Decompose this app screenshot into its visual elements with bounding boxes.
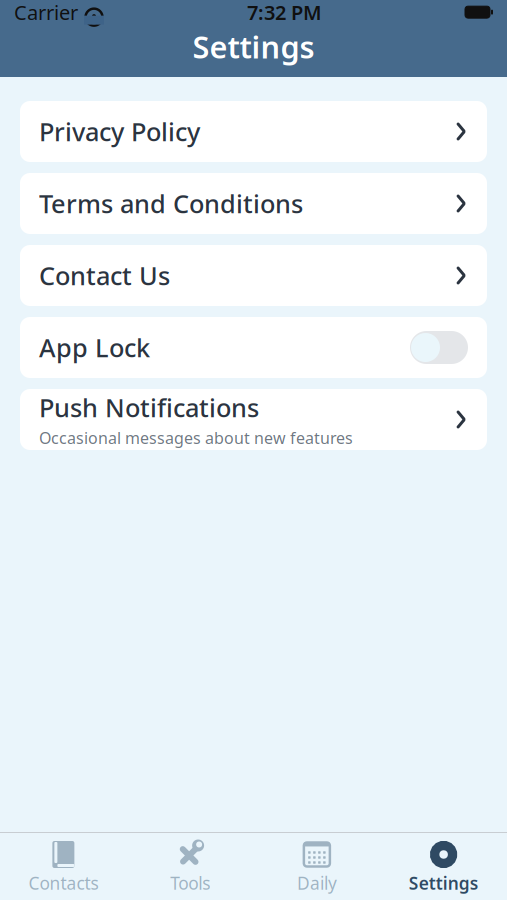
button[interactable]: Push Notifications [20,389,487,450]
staticText: Privacy Policy [39,115,200,148]
button[interactable]: Daily [253,832,380,900]
staticText: Daily [297,871,337,894]
staticText: Push Notifications [39,391,259,424]
staticText: Settings [192,26,314,67]
staticText: Contact Us [39,259,170,292]
staticText: Contacts [28,871,98,894]
button[interactable]: Settings [380,832,507,900]
staticText: Occasional messages about new features [39,427,353,448]
button[interactable]: Contacts [0,832,127,900]
staticText: Carrier [14,0,78,25]
button[interactable]: Terms and Conditions [20,173,487,234]
staticText: App Lock [39,331,150,364]
button[interactable]: Contact Us [20,245,487,306]
staticText: 7:32 PM [247,0,322,25]
button[interactable]: Privacy Policy [20,101,487,162]
staticText: Tools [170,871,210,894]
button[interactable]: Tools [127,832,254,900]
staticText: Settings [409,871,479,894]
staticText: Terms and Conditions [39,187,303,220]
button[interactable]: App Lock [20,317,487,378]
